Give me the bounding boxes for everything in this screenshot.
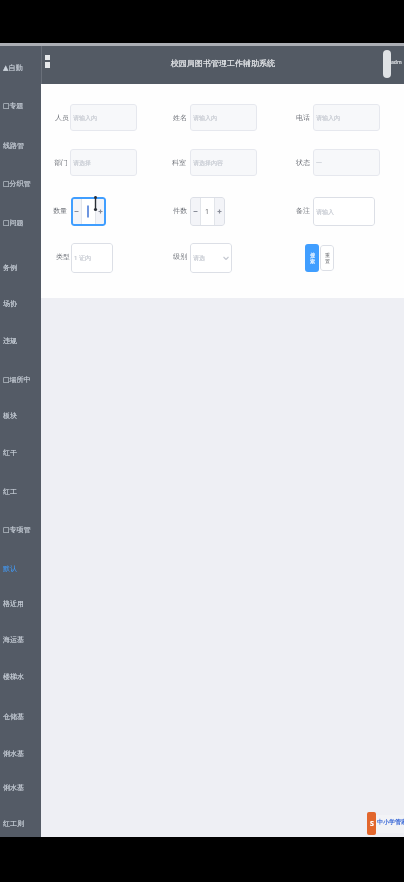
button[interactable]: 红干 <box>0 445 41 459</box>
staticText: 格近用 <box>3 599 24 608</box>
staticText: 请选择 <box>73 159 91 167</box>
button[interactable]: ▲自動 <box>0 60 41 74</box>
button[interactable]: □場所中 <box>0 372 41 386</box>
button[interactable]: 请输入 <box>313 197 375 226</box>
staticText: 红工则 <box>3 819 24 828</box>
staticText: 重 <box>325 252 330 258</box>
button[interactable]: 请输入内 <box>70 104 137 131</box>
staticText: 1 证内 <box>74 254 91 262</box>
button[interactable]: □分织管 <box>0 176 41 190</box>
staticText: 俐水基 <box>3 783 24 792</box>
staticText: 场协 <box>3 299 17 308</box>
button[interactable]: □专題 <box>0 98 41 112</box>
staticText: 请输入 <box>316 208 334 216</box>
button[interactable]: 海运基 <box>0 632 41 646</box>
button[interactable]: 请选择内容 <box>190 149 257 176</box>
staticText: 电话 <box>296 113 310 122</box>
button[interactable]: 一 <box>313 149 380 176</box>
button[interactable]: 红工 <box>0 484 41 498</box>
staticText: □问题 <box>3 218 24 227</box>
staticText: 请输入内 <box>193 114 217 122</box>
button[interactable]: 搜 <box>305 244 319 272</box>
staticText: □专題 <box>3 101 24 110</box>
staticText: 楼梯水 <box>3 672 24 681</box>
staticText: 板块 <box>3 411 17 420</box>
button[interactable]: 俐水基 <box>0 746 41 760</box>
staticText: 部门 <box>54 158 68 167</box>
button[interactable] <box>383 50 391 78</box>
staticText: S <box>370 819 374 829</box>
button[interactable]: 格近用 <box>0 596 41 610</box>
staticText: □专项管 <box>3 525 31 534</box>
staticText: 姓名 <box>173 113 187 122</box>
staticText: 人员 <box>55 113 69 122</box>
staticText: 红干 <box>3 448 17 457</box>
staticText: ▲自動 <box>3 63 23 72</box>
button[interactable]: 违规 <box>0 333 41 347</box>
staticText: 数量 <box>53 206 67 215</box>
staticText: 一 <box>316 159 322 167</box>
button[interactable]: □专项管 <box>0 522 41 536</box>
button[interactable]: 1 证内 <box>71 243 113 273</box>
button[interactable]: 务例 <box>0 260 41 274</box>
staticText: □場所中 <box>3 375 31 384</box>
staticText: 默认 <box>3 564 17 573</box>
staticText: 中小学管家 <box>377 818 404 826</box>
staticText: 级别 <box>173 252 187 261</box>
staticText: 类型 <box>56 252 70 261</box>
staticText: 置 <box>325 258 330 264</box>
staticText: □分织管 <box>3 179 31 188</box>
button[interactable]: 线路管 <box>0 138 41 152</box>
button[interactable]: 俐水基 <box>0 780 41 794</box>
button[interactable]: 请选 <box>190 243 232 273</box>
button[interactable]: 请输入内 <box>313 104 380 131</box>
button[interactable]: 默认 <box>0 561 41 575</box>
staticText: 搜 <box>310 252 315 258</box>
staticText: 索 <box>310 258 315 264</box>
button[interactable] <box>71 197 106 226</box>
staticText: 备注 <box>296 206 310 215</box>
staticText: 务例 <box>3 263 17 272</box>
staticText: 违规 <box>3 336 17 345</box>
staticText: 校园局图书管理工作辅助系统 <box>171 58 275 68</box>
button[interactable]: 楼梯水 <box>0 669 41 683</box>
staticText: 俐水基 <box>3 749 24 758</box>
button[interactable]: 红工则 <box>0 816 41 830</box>
staticText: 红工 <box>3 487 17 496</box>
staticText: 请选择内容 <box>193 159 223 167</box>
staticText: 仓储基 <box>3 712 24 721</box>
staticText: adm <box>391 59 402 66</box>
button[interactable]: □问题 <box>0 215 41 229</box>
button[interactable]: 请选择 <box>70 149 137 176</box>
staticText: 状态 <box>296 158 310 167</box>
staticText: 件数 <box>173 206 187 215</box>
staticText: 科室 <box>172 158 186 167</box>
staticText: 请输入内 <box>73 114 97 122</box>
button[interactable]: 重 <box>320 245 334 271</box>
staticText: 请选 <box>193 254 205 262</box>
button[interactable]: 场协 <box>0 296 41 310</box>
staticText: 请输入内 <box>316 114 340 122</box>
staticText: 海运基 <box>3 635 24 644</box>
button[interactable]: 板块 <box>0 408 41 422</box>
button[interactable]: 1 <box>190 197 225 226</box>
staticText: 1 <box>205 207 210 217</box>
staticText: 线路管 <box>3 141 24 150</box>
button[interactable]: 仓储基 <box>0 709 41 723</box>
button[interactable]: 请输入内 <box>190 104 257 131</box>
